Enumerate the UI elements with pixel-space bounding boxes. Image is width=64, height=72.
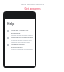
staticText: Get answers bbox=[24, 7, 41, 11]
staticText: Help bbox=[7, 22, 15, 26]
staticText: How do I reset my password bbox=[11, 29, 34, 34]
button[interactable]: Help topic icon bbox=[5, 29, 35, 36]
staticText: Choose which alerts you receive and when… bbox=[11, 39, 34, 43]
staticText: Managing notifications bbox=[11, 36, 34, 39]
staticText: Add or change a payment method for your … bbox=[11, 48, 34, 50]
staticText: Update billing information bbox=[11, 43, 34, 48]
button[interactable]: Help topic icon bbox=[5, 43, 35, 50]
staticText: Follow these simple steps to regain acce… bbox=[11, 34, 34, 36]
staticText: HELP CENTER ARTICLE bbox=[21, 3, 44, 6]
button[interactable]: Help topic icon bbox=[5, 36, 35, 43]
